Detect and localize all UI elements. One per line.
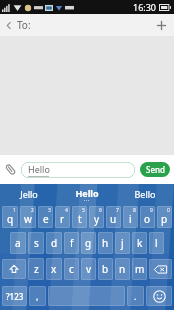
button[interactable]: Period xyxy=(127,286,144,306)
staticText: t xyxy=(78,212,82,226)
staticText: 7 xyxy=(116,207,119,214)
staticText: y xyxy=(94,212,100,226)
button[interactable]: v xyxy=(81,258,96,280)
button[interactable]: Emoji xyxy=(146,286,172,306)
button[interactable]: k xyxy=(132,232,147,254)
button[interactable]: Attach xyxy=(0,160,21,179)
staticText: 0 xyxy=(167,207,170,214)
staticText: h xyxy=(102,236,109,250)
button[interactable]: Jello xyxy=(0,184,58,204)
button[interactable]: Hello xyxy=(58,184,116,204)
staticText: 2 xyxy=(31,207,34,214)
button[interactable]: f xyxy=(64,232,79,254)
button[interactable]: 1 xyxy=(2,206,18,228)
staticText: Send xyxy=(146,164,165,175)
button[interactable]: 3 xyxy=(38,206,53,228)
staticText: l xyxy=(155,236,158,250)
button[interactable]: a xyxy=(10,232,26,254)
button[interactable]: Backspace xyxy=(149,259,172,279)
button[interactable]: b xyxy=(98,258,113,280)
button[interactable]: n xyxy=(115,258,130,280)
staticText: v xyxy=(86,262,92,276)
staticText: ?123 xyxy=(6,291,24,302)
staticText: 8 xyxy=(133,207,136,214)
staticText: o xyxy=(144,212,151,226)
button[interactable]: Shift xyxy=(2,259,26,279)
staticText: 9 xyxy=(150,207,153,214)
button[interactable]: Back xyxy=(0,15,37,35)
button[interactable]: z xyxy=(28,258,44,280)
button[interactable]: x xyxy=(46,258,62,280)
staticText: z xyxy=(34,262,39,276)
staticText: q xyxy=(7,212,14,226)
button[interactable]: Comma xyxy=(29,286,46,306)
staticText: i xyxy=(129,212,132,226)
button[interactable]: 2 xyxy=(20,206,36,228)
staticText: n xyxy=(119,262,126,276)
button[interactable]: 6 xyxy=(89,206,104,228)
staticText: b xyxy=(102,262,109,276)
staticText: 5 xyxy=(82,207,85,214)
button[interactable]: Send xyxy=(140,162,170,177)
staticText: 16:30 xyxy=(133,1,157,13)
button[interactable]: d xyxy=(46,232,62,254)
staticText: e xyxy=(43,212,49,226)
button[interactable]: Add recipient xyxy=(149,17,174,34)
button[interactable]: s xyxy=(28,232,44,254)
staticText: , xyxy=(36,290,39,302)
button[interactable]: j xyxy=(115,232,130,254)
staticText: a xyxy=(15,236,21,250)
button[interactable]: Space xyxy=(48,286,125,306)
staticText: x xyxy=(51,262,57,276)
staticText: s xyxy=(34,236,39,250)
button[interactable]: 5 xyxy=(72,206,87,228)
button[interactable]: 4 xyxy=(55,206,70,228)
other: Back xyxy=(6,21,12,30)
staticText: . xyxy=(134,290,137,302)
button[interactable]: c xyxy=(64,258,79,280)
staticText: k xyxy=(137,236,143,250)
staticText: Hello xyxy=(28,163,50,175)
staticText: 4 xyxy=(65,207,68,214)
button[interactable]: h xyxy=(98,232,113,254)
button[interactable]: Bello xyxy=(116,184,174,204)
staticText: 6 xyxy=(99,207,102,214)
button[interactable]: 8 xyxy=(123,206,138,228)
button[interactable]: Hello xyxy=(21,162,135,178)
button[interactable]: ?123 xyxy=(2,286,27,306)
button[interactable]: m xyxy=(132,258,147,280)
staticText: c xyxy=(69,262,74,276)
staticText: Bello xyxy=(134,188,156,200)
staticText: p xyxy=(161,212,168,226)
staticText: Hello xyxy=(75,187,99,199)
button[interactable]: 0 xyxy=(157,206,172,228)
button[interactable]: 7 xyxy=(106,206,121,228)
staticText: f xyxy=(70,236,74,250)
staticText: 3 xyxy=(48,207,51,214)
staticText: d xyxy=(51,236,58,250)
button[interactable]: g xyxy=(81,232,96,254)
staticText: g xyxy=(85,236,92,250)
staticText: u xyxy=(110,212,117,226)
staticText: w xyxy=(24,212,32,226)
staticText: Jello xyxy=(20,188,38,200)
staticText: To: xyxy=(17,18,31,32)
staticText: m xyxy=(135,262,145,276)
staticText: r xyxy=(60,212,65,226)
button[interactable]: l xyxy=(149,232,164,254)
button[interactable]: 9 xyxy=(140,206,155,228)
staticText: j xyxy=(121,236,124,250)
staticText: 1 xyxy=(13,207,16,214)
